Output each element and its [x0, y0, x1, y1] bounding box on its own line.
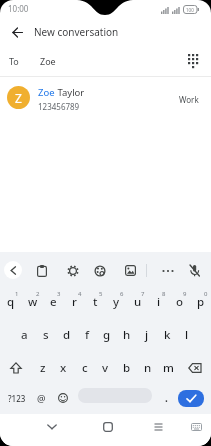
- staticText: p: [197, 294, 205, 310]
- staticText: m: [163, 360, 174, 376]
- button[interactable]: r: [64, 285, 85, 318]
- button[interactable]: f: [77, 318, 97, 351]
- staticText: 1: [15, 290, 19, 298]
- staticText: s: [43, 327, 49, 343]
- staticText: 4: [78, 290, 82, 298]
- button[interactable]: e: [43, 285, 64, 318]
- button[interactable]: s: [35, 318, 56, 351]
- button[interactable]: [54, 383, 71, 413]
- staticText: 6: [120, 290, 124, 298]
- staticText: To: [9, 55, 19, 67]
- staticText: e: [50, 294, 57, 310]
- staticText: r: [72, 294, 77, 310]
- button[interactable]: [4, 261, 22, 279]
- staticText: 100: [186, 7, 194, 13]
- staticText: New conversation: [34, 25, 119, 39]
- staticText: j: [145, 327, 149, 343]
- staticText: x: [60, 360, 67, 376]
- staticText: n: [144, 360, 152, 376]
- button[interactable]: [65, 263, 80, 278]
- staticText: @: [37, 392, 46, 405]
- button[interactable]: .: [158, 383, 174, 413]
- button[interactable]: i: [148, 285, 169, 318]
- button[interactable]: x: [53, 351, 74, 384]
- staticText: Zoe: [38, 86, 55, 99]
- button[interactable]: h: [117, 318, 137, 351]
- staticText: z: [40, 360, 46, 376]
- button[interactable]: m: [158, 351, 179, 384]
- button[interactable]: c: [74, 351, 95, 384]
- staticText: o: [176, 294, 184, 310]
- button[interactable]: [42, 417, 62, 437]
- button[interactable]: l: [177, 318, 197, 351]
- button[interactable]: p: [190, 285, 211, 318]
- button[interactable]: z: [32, 351, 53, 384]
- button[interactable]: Z: [0, 77, 211, 121]
- staticText: a: [21, 327, 28, 343]
- staticText: y: [113, 294, 120, 310]
- staticText: c: [82, 360, 88, 376]
- button[interactable]: [148, 417, 168, 437]
- button[interactable]: u: [127, 285, 148, 318]
- staticText: 2: [36, 290, 40, 298]
- button[interactable]: [187, 263, 202, 278]
- staticText: Zoe: [40, 55, 56, 67]
- button[interactable]: y: [106, 285, 127, 318]
- button[interactable]: b: [116, 351, 137, 384]
- staticText: i: [157, 294, 161, 310]
- staticText: 123456789: [38, 101, 80, 112]
- staticText: h: [123, 327, 131, 343]
- button[interactable]: [160, 263, 175, 278]
- staticText: v: [102, 360, 109, 376]
- button[interactable]: [179, 351, 211, 384]
- button[interactable]: To: [0, 46, 211, 76]
- button[interactable]: j: [137, 318, 157, 351]
- staticText: b: [123, 360, 131, 376]
- staticText: w: [28, 294, 38, 310]
- button[interactable]: n: [137, 351, 158, 384]
- staticText: q: [7, 294, 15, 310]
- button[interactable]: [123, 263, 138, 278]
- staticText: l: [185, 327, 189, 343]
- button[interactable]: [98, 417, 118, 437]
- staticText: k: [164, 327, 171, 343]
- button[interactable]: o: [169, 285, 190, 318]
- button[interactable]: [92, 263, 107, 278]
- button[interactable]: g: [97, 318, 117, 351]
- staticText: 10:00: [8, 3, 29, 14]
- button[interactable]: [184, 52, 202, 70]
- staticText: 9: [183, 290, 187, 298]
- staticText: d: [63, 327, 71, 343]
- button[interactable]: a: [14, 318, 35, 351]
- staticText: Z: [15, 90, 22, 106]
- staticText: ?123: [8, 393, 26, 404]
- button[interactable]: k: [157, 318, 177, 351]
- button[interactable]: @: [34, 383, 49, 413]
- button[interactable]: d: [56, 318, 77, 351]
- button[interactable]: w: [22, 285, 43, 318]
- button[interactable]: [34, 263, 49, 278]
- staticText: .: [165, 391, 168, 405]
- button[interactable]: v: [95, 351, 116, 384]
- staticText: 8: [162, 290, 166, 298]
- staticText: f: [85, 327, 90, 343]
- button[interactable]: [0, 351, 32, 384]
- staticText: 7: [141, 290, 145, 298]
- staticText: u: [134, 294, 142, 310]
- staticText: 3: [57, 290, 61, 298]
- staticText: 5: [99, 290, 103, 298]
- staticText: t: [93, 294, 98, 310]
- staticText: 0: [204, 290, 208, 298]
- button[interactable]: ?123: [2, 383, 32, 413]
- button[interactable]: t: [85, 285, 106, 318]
- staticText: g: [103, 327, 111, 343]
- staticText: Taylor: [55, 86, 85, 99]
- button[interactable]: q: [0, 285, 22, 318]
- button[interactable]: [6, 21, 28, 43]
- button[interactable]: [188, 419, 204, 435]
- staticText: Work: [179, 94, 199, 105]
- button[interactable]: [178, 390, 204, 407]
